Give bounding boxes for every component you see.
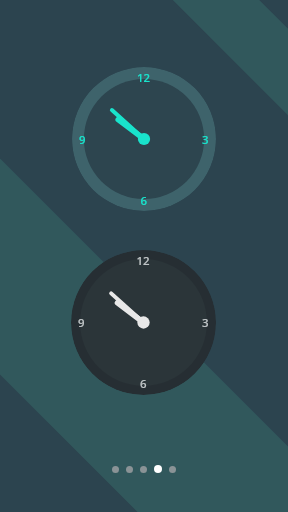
button[interactable]: Page 5 xyxy=(169,466,176,473)
button[interactable]: Page 4 xyxy=(154,465,162,473)
button[interactable]: Page 1 xyxy=(112,466,119,473)
button[interactable]: Page 3 xyxy=(140,466,147,473)
button[interactable]: Page 2 xyxy=(126,466,133,473)
button[interactable]: Dark analog watch face preview xyxy=(71,250,216,395)
button[interactable]: Teal analog watch face preview xyxy=(72,67,216,211)
